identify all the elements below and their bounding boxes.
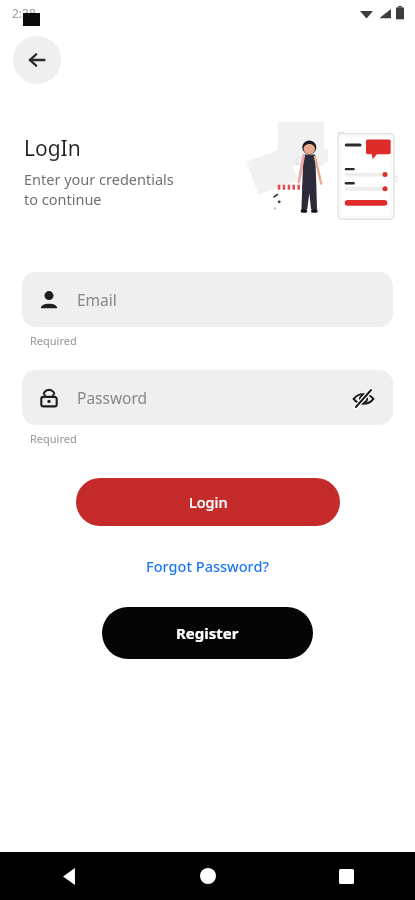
staticText: Forgot Password? — [146, 556, 269, 576]
staticText: Enter your credentials to continue — [24, 169, 174, 209]
staticText: Password — [77, 387, 349, 408]
staticText: Login — [189, 492, 228, 512]
button[interactable]: Toggle password visibility — [349, 384, 377, 412]
button[interactable]: Register — [102, 607, 313, 659]
staticText: Required — [30, 333, 77, 348]
button[interactable]: Forgot Password? — [138, 552, 277, 580]
staticText: LogIn — [24, 134, 81, 163]
button[interactable]: Password — [22, 370, 393, 425]
staticText: Register — [176, 623, 239, 643]
button[interactable]: Recent apps — [323, 853, 369, 899]
button[interactable]: Back — [46, 853, 92, 899]
staticText: Email — [77, 289, 377, 310]
staticText: Required — [30, 431, 77, 446]
button[interactable]: Login — [76, 478, 340, 526]
button[interactable]: Email — [22, 272, 393, 327]
staticText: 2:38 — [12, 5, 36, 21]
button[interactable]: Back — [13, 36, 61, 84]
button[interactable]: Home — [185, 853, 231, 899]
